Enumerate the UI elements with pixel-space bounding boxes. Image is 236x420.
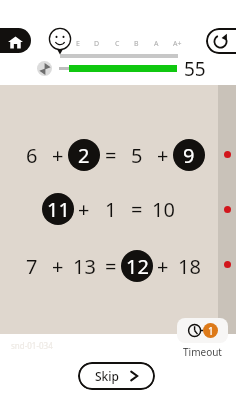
- staticText: snd-01-034: [11, 340, 53, 351]
- button[interactable]: Timeout: [177, 318, 228, 343]
- button[interactable]: 12: [121, 250, 153, 282]
- staticText: 1: [208, 324, 214, 338]
- button[interactable]: 9: [173, 139, 205, 171]
- staticText: +: [52, 253, 64, 280]
- staticText: 7: [26, 253, 38, 280]
- button[interactable]: Skip: [78, 362, 155, 390]
- staticText: 10: [152, 196, 175, 223]
- staticText: 12: [126, 253, 149, 280]
- staticText: A+: [173, 39, 182, 49]
- staticText: E: [76, 39, 80, 49]
- button[interactable]: 2: [68, 139, 100, 171]
- staticText: Timeout: [183, 345, 222, 359]
- staticText: =: [105, 253, 117, 280]
- staticText: 11: [47, 196, 70, 223]
- staticText: +: [78, 196, 90, 223]
- staticText: 5: [131, 142, 143, 169]
- staticText: 2: [78, 142, 90, 169]
- button[interactable]: Home: [0, 28, 31, 53]
- staticText: 18: [178, 253, 201, 280]
- staticText: A: [154, 39, 159, 49]
- staticText: 1: [105, 196, 117, 223]
- staticText: C: [115, 39, 120, 49]
- button[interactable]: Restart: [206, 28, 236, 54]
- staticText: 6: [26, 142, 38, 169]
- staticText: D: [94, 39, 100, 49]
- staticText: +: [52, 142, 64, 169]
- staticText: B: [134, 39, 139, 49]
- button[interactable]: 11: [42, 193, 74, 225]
- staticText: =: [105, 142, 117, 169]
- staticText: =: [131, 196, 143, 223]
- staticText: Skip: [95, 368, 119, 384]
- staticText: 9: [183, 142, 195, 169]
- staticText: +: [157, 253, 169, 280]
- staticText: +: [157, 142, 169, 169]
- staticText: 55: [184, 56, 206, 82]
- staticText: 13: [73, 253, 96, 280]
